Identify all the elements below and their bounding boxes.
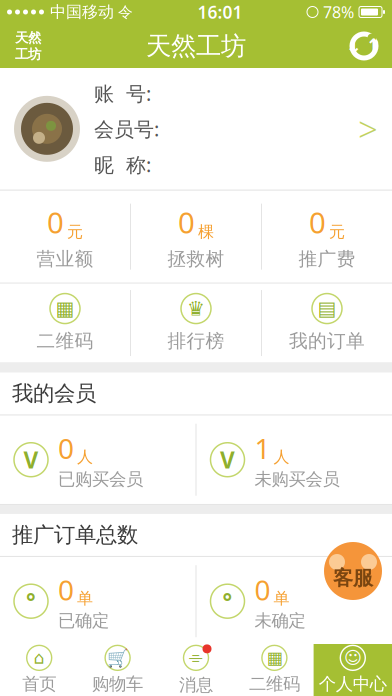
staticText: ⌂ <box>34 648 45 668</box>
button[interactable]: ⌂ <box>0 644 78 696</box>
staticText: 未购买会员 <box>254 469 339 490</box>
staticText: 客服 <box>333 566 373 590</box>
button[interactable]: ♛ <box>131 284 261 362</box>
button[interactable]: V <box>196 415 392 504</box>
staticText: ⌯ <box>189 649 203 666</box>
button[interactable]: 客服 <box>322 540 384 602</box>
staticText: 购物车 <box>92 673 143 695</box>
staticText: 人 <box>273 447 289 467</box>
staticText: 0 <box>58 429 74 467</box>
staticText: 推广订单总数 <box>12 522 138 548</box>
staticText: 营业额 <box>36 248 93 270</box>
staticText: ↑ <box>365 35 382 57</box>
staticText: ☺ <box>344 648 362 668</box>
button[interactable]: 0 <box>0 191 130 283</box>
staticText: 首页 <box>22 673 56 695</box>
staticText: 会员号: <box>94 116 159 142</box>
button[interactable]: 🛒 <box>78 644 157 696</box>
button[interactable]: ⌯ <box>157 644 235 696</box>
staticText: 中国移动 <box>50 2 114 22</box>
staticText: « <box>20 667 29 690</box>
staticText: 0 <box>309 203 326 242</box>
button[interactable]: ▤ <box>262 284 392 362</box>
staticText: 人 <box>77 447 93 467</box>
staticText: 消息 <box>179 674 213 696</box>
staticText: 昵 称: <box>94 151 151 178</box>
staticText: ° <box>222 586 232 616</box>
staticText: > <box>358 106 378 152</box>
staticText: 16:01 <box>197 0 242 23</box>
staticText: V <box>23 445 38 475</box>
staticText: 0 <box>47 203 64 242</box>
staticText: 元 <box>329 222 345 242</box>
staticText: 排行榜 <box>167 330 224 352</box>
staticText: 0 <box>178 203 195 242</box>
staticText: ↓ <box>345 35 362 57</box>
staticText: 工坊 <box>15 46 41 62</box>
button[interactable]: V <box>0 415 195 504</box>
staticText: 78% <box>323 1 354 23</box>
button[interactable]: 0 <box>131 191 261 283</box>
staticText: 我的会员 <box>12 380 96 407</box>
staticText: ▤ <box>317 297 336 320</box>
staticText: ° <box>26 586 36 616</box>
staticText: 推广费 <box>298 248 355 270</box>
staticText: 二维码 <box>249 673 300 695</box>
staticText: 账 号: <box>94 80 151 107</box>
staticText: 已确定 <box>58 610 109 631</box>
staticText: 我的订单 <box>289 330 365 352</box>
button[interactable]: « <box>0 655 392 696</box>
button[interactable]: ° <box>196 557 392 645</box>
staticText: > <box>363 659 380 696</box>
staticText: 二维码 <box>36 330 93 352</box>
staticText: 0 <box>254 571 270 608</box>
staticText: ♛ <box>187 297 205 320</box>
staticText: ▦ <box>266 648 282 668</box>
staticText: 已购买会员 <box>58 469 143 490</box>
button[interactable]: 刷新 <box>342 24 386 68</box>
button[interactable]: 0 <box>262 191 392 283</box>
staticText: 未确定 <box>254 610 305 631</box>
button[interactable]: ▦ <box>0 284 130 362</box>
staticText: ▦ <box>55 297 74 320</box>
staticText: 单 <box>77 588 93 608</box>
staticText: 🛒 <box>107 648 129 668</box>
staticText: 天然工坊 <box>146 30 246 61</box>
staticText: 个人中心 <box>319 673 387 695</box>
staticText: 棵 <box>198 222 214 242</box>
staticText: 令 <box>118 3 133 21</box>
button[interactable]: 天然工坊 <box>6 24 50 68</box>
button[interactable]: ▦ <box>235 644 314 696</box>
staticText: 单 <box>273 588 289 608</box>
staticText: 0 <box>58 571 74 608</box>
staticText: V <box>220 445 235 475</box>
staticText: 元 <box>67 222 83 242</box>
button[interactable]: ° <box>0 557 195 645</box>
staticText: 拯救树 <box>167 248 224 270</box>
button[interactable]: 账 号: <box>0 68 392 190</box>
staticText: 1 <box>254 429 270 467</box>
staticText: 分享 <box>50 665 92 691</box>
button[interactable]: ☺ <box>314 644 392 696</box>
staticText: 天然 <box>15 30 41 46</box>
